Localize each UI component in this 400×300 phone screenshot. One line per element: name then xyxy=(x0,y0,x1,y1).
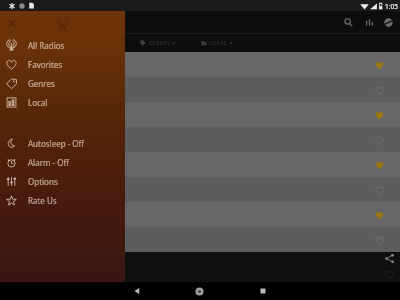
button[interactable]: Autosleep - Off xyxy=(0,134,125,153)
button[interactable]: Favorite xyxy=(0,52,400,77)
staticText: Local xyxy=(28,97,48,108)
button[interactable]: Back xyxy=(112,282,162,300)
button[interactable]: Recents xyxy=(238,282,288,300)
button[interactable]: Favorite xyxy=(369,155,389,175)
button[interactable]: Home xyxy=(174,282,224,300)
button[interactable]: LOCAL xyxy=(199,37,235,48)
button[interactable]: Favorite xyxy=(369,130,389,150)
staticText: All Radios xyxy=(28,40,65,51)
button[interactable]: Favorite xyxy=(0,202,400,227)
staticText: 1:05 xyxy=(385,2,398,11)
button[interactable]: Favorite xyxy=(0,127,400,152)
staticText: Alarm - Off xyxy=(28,157,69,168)
button[interactable]: Favorite xyxy=(0,177,400,202)
button[interactable]: Favorite xyxy=(0,77,400,102)
button[interactable]: Favorites xyxy=(0,55,125,74)
staticText: LOCAL xyxy=(209,39,227,46)
button[interactable]: Genres xyxy=(0,74,125,93)
staticText: GENRES xyxy=(148,39,170,46)
button[interactable]: Favorite xyxy=(0,227,400,252)
button[interactable]: Profile xyxy=(378,12,398,32)
button[interactable]: Alarm - Off xyxy=(0,153,125,172)
button[interactable]: Favorite xyxy=(369,180,389,200)
button[interactable]: Favorite xyxy=(369,205,389,225)
staticText: Genres xyxy=(28,78,55,89)
button[interactable]: Favorite xyxy=(369,80,389,100)
button[interactable]: Favorite xyxy=(369,105,389,125)
staticText: Rate Us xyxy=(28,195,57,206)
button[interactable]: All Radios xyxy=(0,36,125,55)
button[interactable]: Favorite xyxy=(0,102,400,127)
button[interactable]: Rate Us xyxy=(0,191,125,210)
staticText: Favorites xyxy=(28,59,63,70)
staticText: Autosleep - Off xyxy=(28,138,85,149)
button[interactable]: Favorite xyxy=(369,230,389,250)
button[interactable]: Close drawer xyxy=(3,15,19,31)
button[interactable]: Local xyxy=(0,93,125,112)
button[interactable]: Share xyxy=(383,252,396,265)
button[interactable]: Favorite xyxy=(0,152,400,177)
button[interactable]: GENRES xyxy=(138,37,178,48)
button[interactable]: Equalizer xyxy=(359,12,379,32)
button[interactable]: Favorite xyxy=(369,55,389,75)
staticText: Options xyxy=(28,176,58,187)
button[interactable]: Options xyxy=(0,172,125,191)
button[interactable]: Search xyxy=(338,12,358,32)
button[interactable]: Favorite xyxy=(383,268,396,281)
